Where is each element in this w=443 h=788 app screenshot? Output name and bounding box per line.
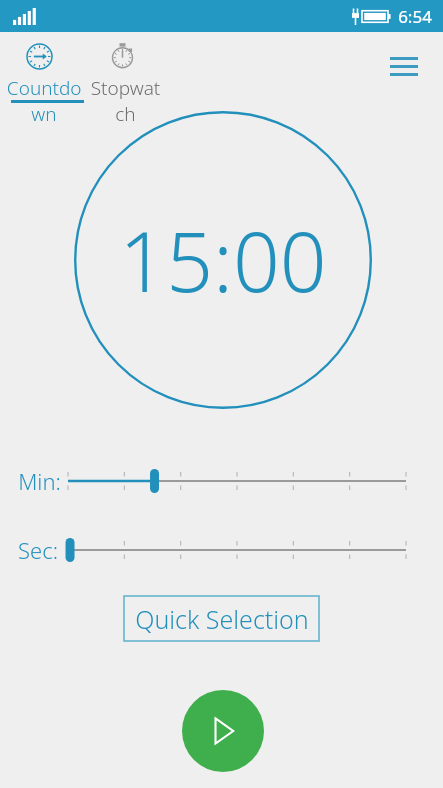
staticText: 15:00 [119, 204, 327, 316]
staticText: Min: [18, 466, 61, 496]
staticText: Sec: [18, 535, 58, 565]
button[interactable]: Stopwatch [88, 38, 163, 104]
button[interactable]: Sec: [0, 532, 443, 568]
button[interactable]: Countdown [4, 38, 84, 104]
staticText: Quick Selection [135, 602, 309, 636]
button[interactable]: 15:00 [74, 111, 372, 409]
staticText: Countdown [6, 75, 82, 127]
button[interactable]: Menu [380, 44, 428, 88]
button[interactable]: Min: [0, 463, 443, 499]
staticText: Stopwatch [88, 75, 163, 127]
button[interactable]: Quick Selection [124, 596, 319, 641]
button[interactable]: Start timer [182, 690, 264, 772]
staticText: 6:54 [398, 5, 432, 28]
